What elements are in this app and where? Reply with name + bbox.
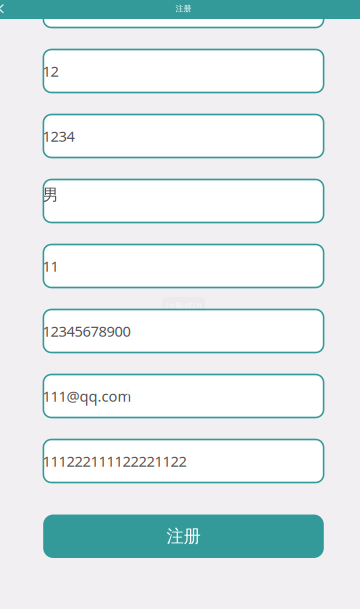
staticText: 11 bbox=[42, 256, 58, 276]
staticText: 111222111122221122 bbox=[42, 451, 186, 471]
staticText: 注册 bbox=[175, 4, 191, 14]
button[interactable]: Back bbox=[0, 0, 10, 19]
staticText: 男 bbox=[42, 185, 58, 205]
staticText: 12 bbox=[42, 61, 58, 81]
staticText: 111@qq.com bbox=[42, 386, 131, 406]
staticText: 注册成功 bbox=[165, 301, 201, 312]
staticText: 注册 bbox=[166, 526, 200, 547]
staticText: 12345678900 bbox=[42, 321, 130, 341]
staticText: 1234 bbox=[42, 126, 74, 146]
button[interactable]: 注册 bbox=[43, 514, 324, 558]
